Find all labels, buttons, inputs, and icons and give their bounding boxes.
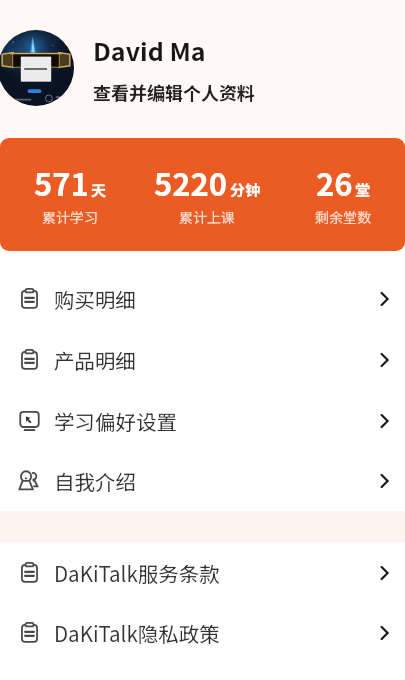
staticText: 571 xyxy=(34,160,89,205)
staticText: DaKiTalk隐私政策 xyxy=(54,618,220,648)
staticText: 学习偏好设置 xyxy=(54,406,177,436)
button[interactable]: DaKiTalk隐私政策 xyxy=(0,602,405,663)
staticText: DaKiTalk服务条款 xyxy=(54,558,220,588)
staticText: David Ma xyxy=(93,32,206,68)
staticText: 自我介绍 xyxy=(54,466,136,496)
button[interactable]: David Ma xyxy=(0,0,405,138)
staticText: 26 xyxy=(316,160,353,205)
button[interactable]: 产品明细 xyxy=(0,329,405,390)
staticText: 累计学习 xyxy=(42,207,98,227)
staticText: 天 xyxy=(91,179,107,201)
staticText: 5220 xyxy=(154,160,228,205)
button[interactable]: 购买明细 xyxy=(0,268,405,329)
button[interactable]: DaKiTalk服务条款 xyxy=(0,542,405,603)
staticText: 累计上课 xyxy=(179,207,235,227)
staticText: 产品明细 xyxy=(54,345,136,375)
staticText: 分钟 xyxy=(230,179,261,201)
button[interactable]: 学习偏好设置 xyxy=(0,390,405,451)
staticText: 购买明细 xyxy=(54,284,136,314)
staticText: 堂 xyxy=(355,179,371,201)
staticText: 查看并编辑个人资料 xyxy=(93,79,255,105)
staticText: 剩余堂数 xyxy=(315,207,371,227)
button[interactable]: 自我介绍 xyxy=(0,450,405,511)
